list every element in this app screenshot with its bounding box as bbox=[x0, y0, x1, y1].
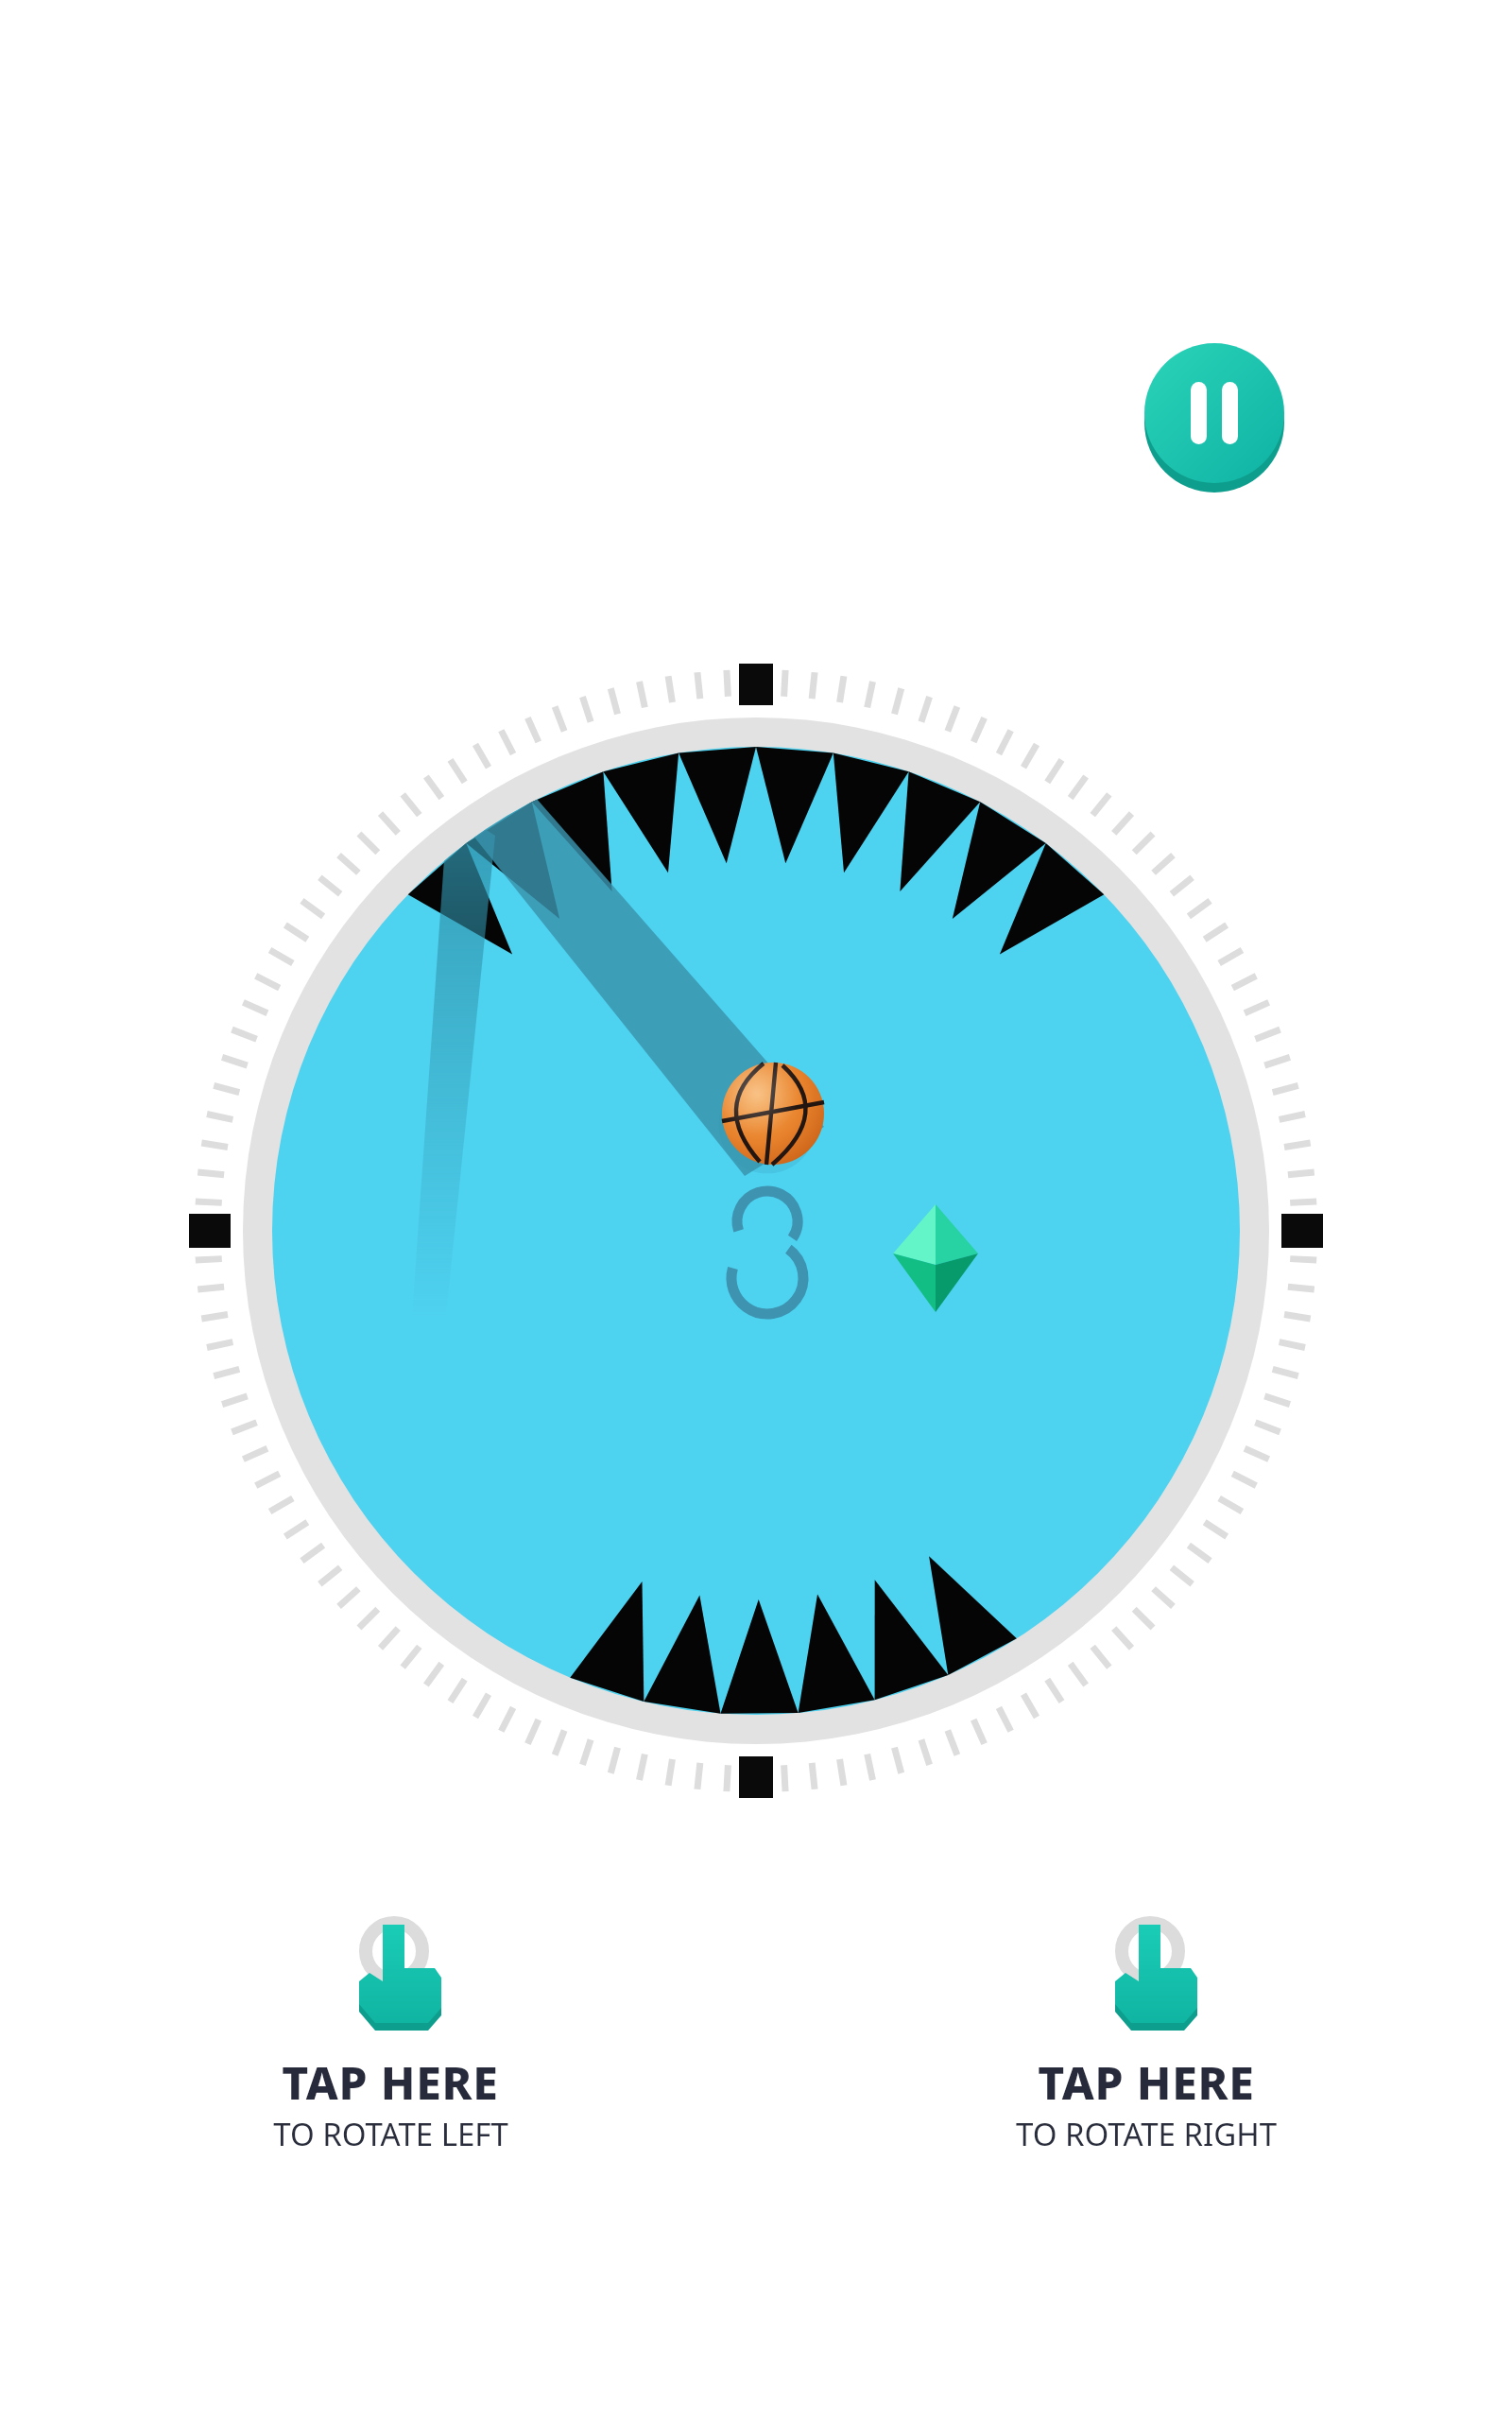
staticText: TO ROTATE RIGHT bbox=[1016, 2113, 1277, 2155]
button[interactable]: TAP HERE bbox=[135, 1921, 645, 2155]
button[interactable]: Pause game bbox=[1139, 337, 1290, 489]
button[interactable]: TAP HERE bbox=[891, 1921, 1401, 2155]
staticText: TO ROTATE LEFT bbox=[273, 2113, 508, 2155]
staticText: TAP HERE bbox=[282, 2051, 499, 2113]
staticText: TAP HERE bbox=[1038, 2051, 1255, 2113]
